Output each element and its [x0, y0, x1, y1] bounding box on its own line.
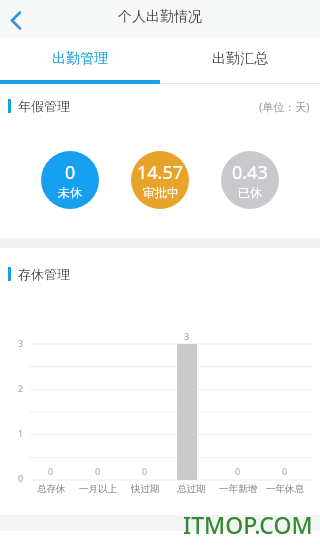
staticText: 0	[18, 472, 24, 484]
staticText: 个人出勤情况	[118, 8, 202, 26]
staticText: 未休	[58, 185, 82, 200]
staticText: 审批中	[143, 185, 179, 200]
staticText: 0	[235, 465, 241, 477]
staticText: 年假管理	[18, 98, 70, 114]
staticText: 一年新增	[219, 483, 257, 495]
button[interactable]: 0.43	[221, 151, 279, 209]
staticText: 出勤管理	[52, 50, 108, 68]
staticText: 0.43	[232, 160, 268, 185]
staticText: 一月以上	[79, 483, 117, 495]
staticText: 出勤汇总	[212, 50, 268, 68]
staticText: ITMOP.COM	[183, 509, 313, 539]
staticText: 一年休息	[266, 483, 304, 495]
staticText: 0	[282, 465, 288, 477]
staticText: 总过期	[177, 483, 206, 495]
staticText: 0	[142, 465, 148, 477]
staticText: 3	[184, 330, 190, 342]
staticText: 0	[48, 465, 54, 477]
staticText: 总存休	[37, 483, 66, 495]
staticText: 0	[95, 465, 101, 477]
button[interactable]: 出勤汇总	[160, 38, 320, 84]
staticText: 2	[18, 382, 24, 394]
button[interactable]: 0	[41, 151, 99, 209]
staticText: 3	[18, 337, 24, 349]
button[interactable]	[0, 0, 40, 38]
button[interactable]: 14.57	[131, 151, 189, 209]
staticText: 已休	[238, 185, 262, 200]
button[interactable]: 出勤管理	[0, 38, 160, 84]
staticText: 0	[65, 160, 76, 185]
staticText: 14.57	[137, 160, 184, 185]
staticText: 快过期	[131, 483, 160, 495]
staticText: 1	[18, 427, 24, 439]
staticText: 存休管理	[18, 266, 70, 282]
staticText: (单位：天)	[259, 99, 310, 114]
